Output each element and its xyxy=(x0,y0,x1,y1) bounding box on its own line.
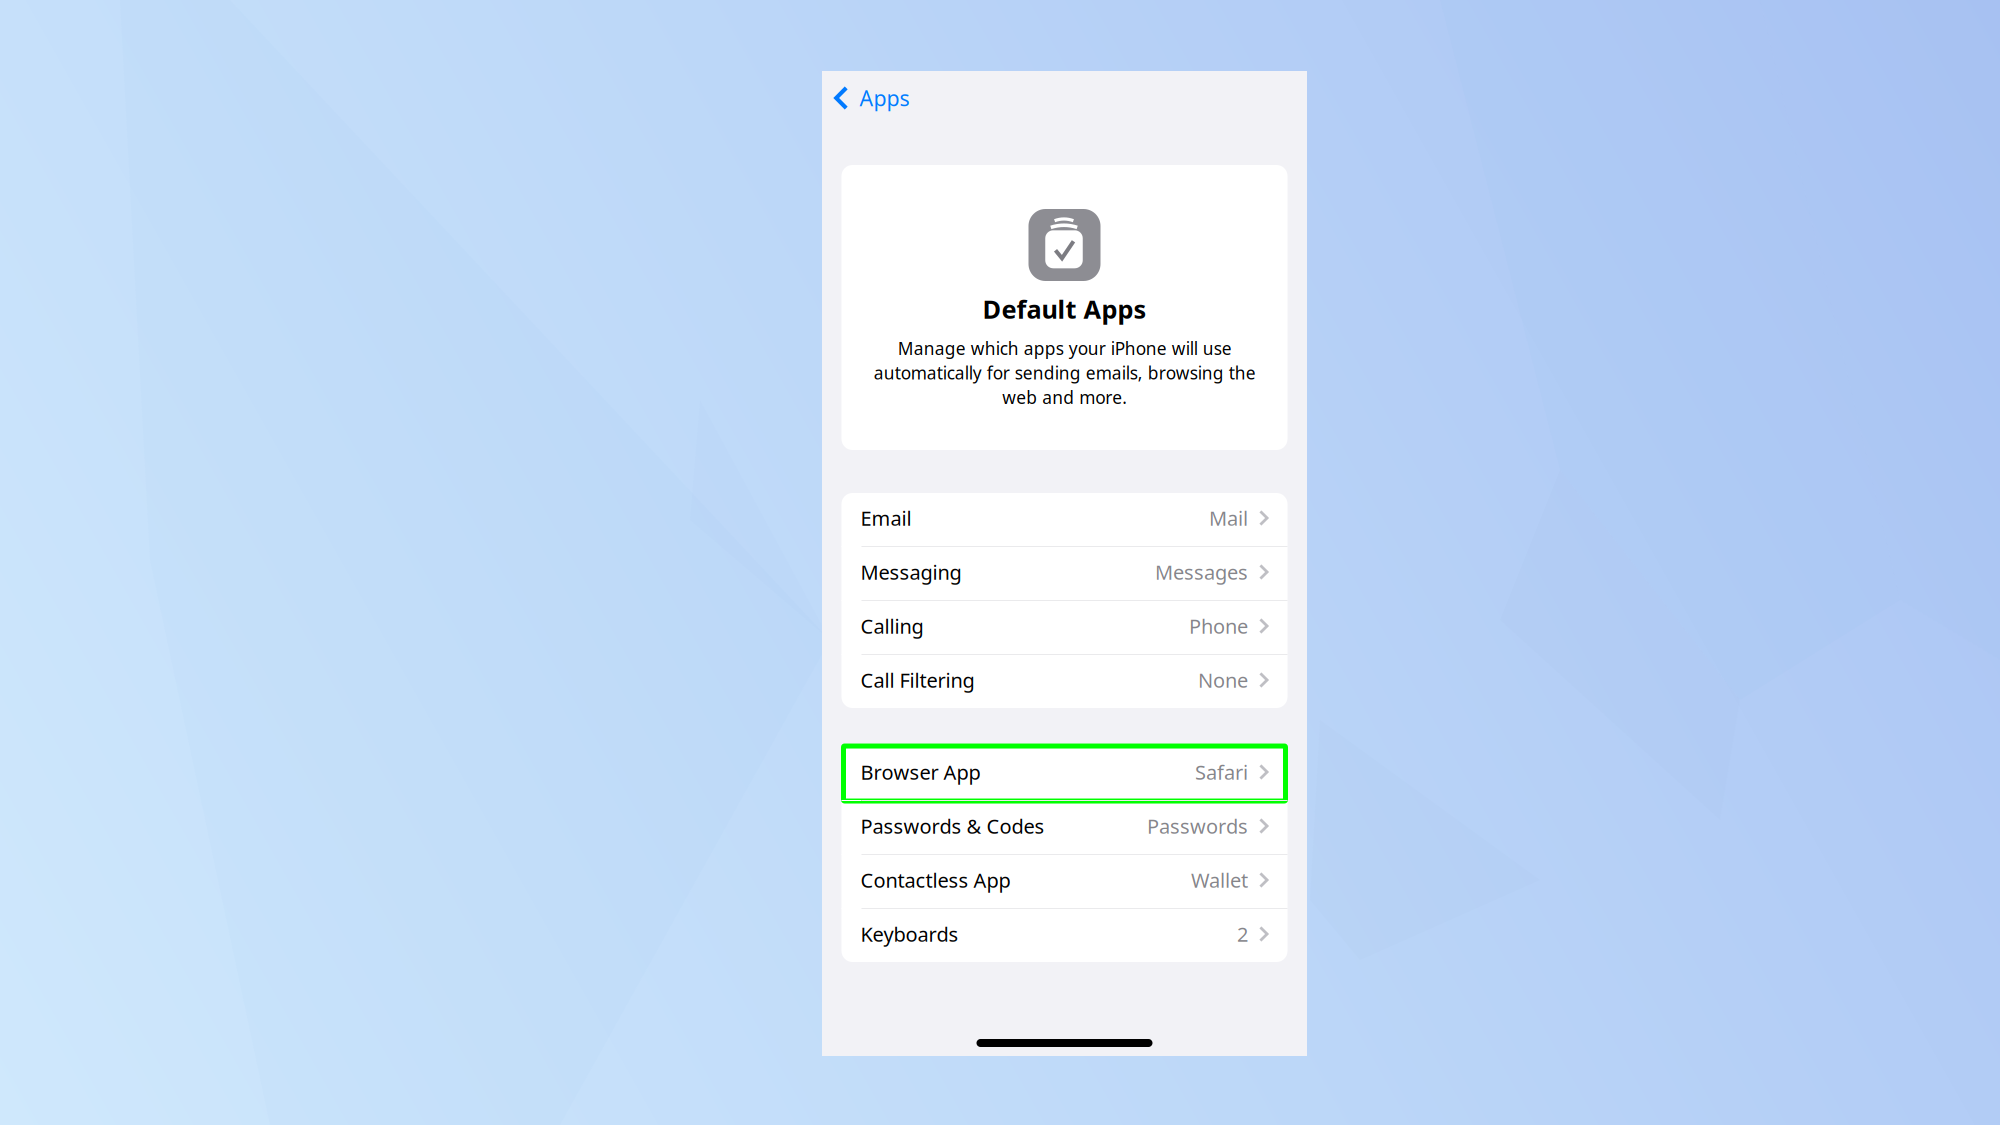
staticText: Call Filtering xyxy=(860,667,974,693)
staticText: Safari xyxy=(1195,759,1248,785)
staticText: Messages xyxy=(1155,559,1248,585)
staticText: Phone xyxy=(1189,613,1248,639)
button[interactable]: Call Filtering xyxy=(841,655,1287,708)
staticText: Passwords & Codes xyxy=(860,813,1044,839)
button[interactable]: Browser App xyxy=(841,747,1287,800)
staticText: Calling xyxy=(860,613,923,639)
staticText: Contactless App xyxy=(860,867,1010,893)
button[interactable]: Apps xyxy=(822,71,921,125)
staticText: None xyxy=(1198,667,1248,693)
staticText: Wallet xyxy=(1191,867,1248,893)
staticText: Passwords xyxy=(1147,813,1248,839)
button[interactable]: Keyboards xyxy=(841,909,1287,962)
staticText: Browser App xyxy=(860,759,980,785)
button[interactable]: Contactless App xyxy=(841,855,1287,908)
button[interactable]: Messaging xyxy=(841,547,1287,600)
button[interactable]: Calling xyxy=(841,601,1287,654)
button[interactable]: Passwords & Codes xyxy=(841,801,1287,854)
staticText: Messaging xyxy=(860,559,961,585)
button[interactable]: Email xyxy=(841,493,1287,546)
staticText: Mail xyxy=(1209,505,1248,531)
staticText: Apps xyxy=(859,84,909,112)
staticText: Manage which apps your iPhone will use a… xyxy=(873,337,1255,409)
staticText: Keyboards xyxy=(860,921,958,947)
staticText: 2 xyxy=(1237,921,1248,947)
staticText: Email xyxy=(860,505,911,531)
staticText: Default Apps xyxy=(982,292,1146,326)
